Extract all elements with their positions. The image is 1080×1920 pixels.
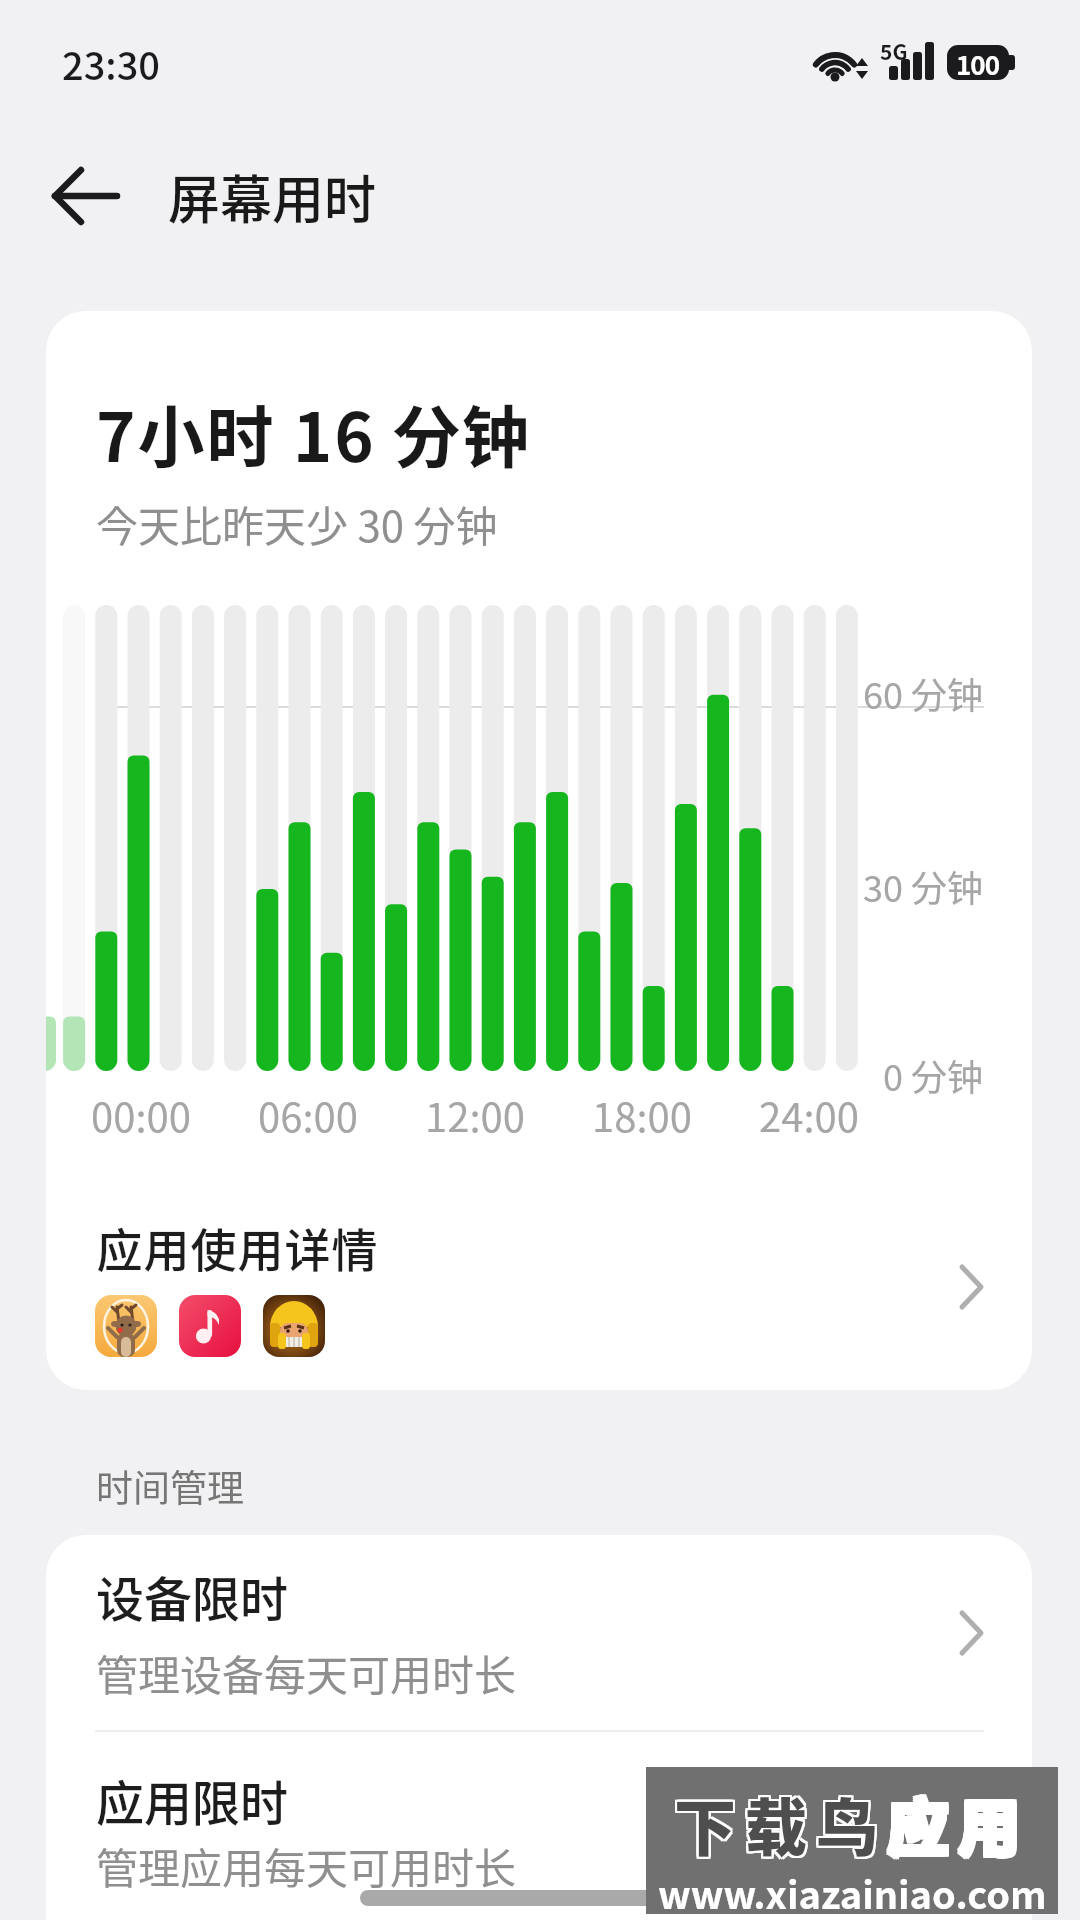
- staticText: 18:00: [592, 1086, 692, 1144]
- staticText: 下载鸟应用: [674, 1781, 1030, 1871]
- staticText: 管理设备每天可用时长: [96, 1642, 517, 1703]
- staticText: 下载鸟应用: [676, 1777, 1032, 1867]
- staticText: 23:30: [62, 36, 160, 91]
- staticText: 06:00: [258, 1086, 358, 1144]
- button[interactable]: 应用限时: [46, 1732, 1032, 1920]
- staticText: 下载鸟应用: [672, 1781, 1028, 1871]
- staticText: 下载鸟应用: [672, 1779, 1028, 1869]
- staticText: 24:00: [759, 1086, 859, 1144]
- staticText: 100: [956, 45, 1000, 80]
- staticText: www.xiazainiao.com: [658, 1865, 1047, 1911]
- staticText: 设备限时: [96, 1561, 289, 1631]
- staticText: 应用使用详情: [96, 1214, 378, 1281]
- staticText: 12:00: [425, 1086, 525, 1144]
- staticText: 下载鸟应用: [676, 1781, 1032, 1871]
- staticText: 0 分钟: [883, 1049, 984, 1101]
- staticText: 下载鸟应用: [674, 1779, 1030, 1869]
- staticText: 60 分钟: [863, 667, 984, 719]
- staticText: 管理应用每天可用时长: [96, 1835, 517, 1896]
- staticText: 屏幕用时: [168, 159, 377, 234]
- staticText: 时间管理: [96, 1459, 244, 1513]
- staticText: 7小时 16 分钟: [96, 384, 532, 481]
- staticText: 应用限时: [96, 1765, 289, 1835]
- staticText: 下载鸟应用: [676, 1779, 1032, 1869]
- button[interactable]: [40, 160, 130, 232]
- button[interactable]: 应用使用详情: [46, 1201, 1032, 1390]
- staticText: 下载鸟应用: [674, 1777, 1030, 1867]
- staticText: 下载鸟应用: [672, 1777, 1028, 1867]
- staticText: 5G: [880, 36, 908, 62]
- staticText: 00:00: [91, 1086, 191, 1144]
- button[interactable]: 设备限时: [46, 1535, 1032, 1731]
- staticText: 30 分钟: [863, 860, 984, 912]
- staticText: 今天比昨天少 30 分钟: [96, 493, 498, 554]
